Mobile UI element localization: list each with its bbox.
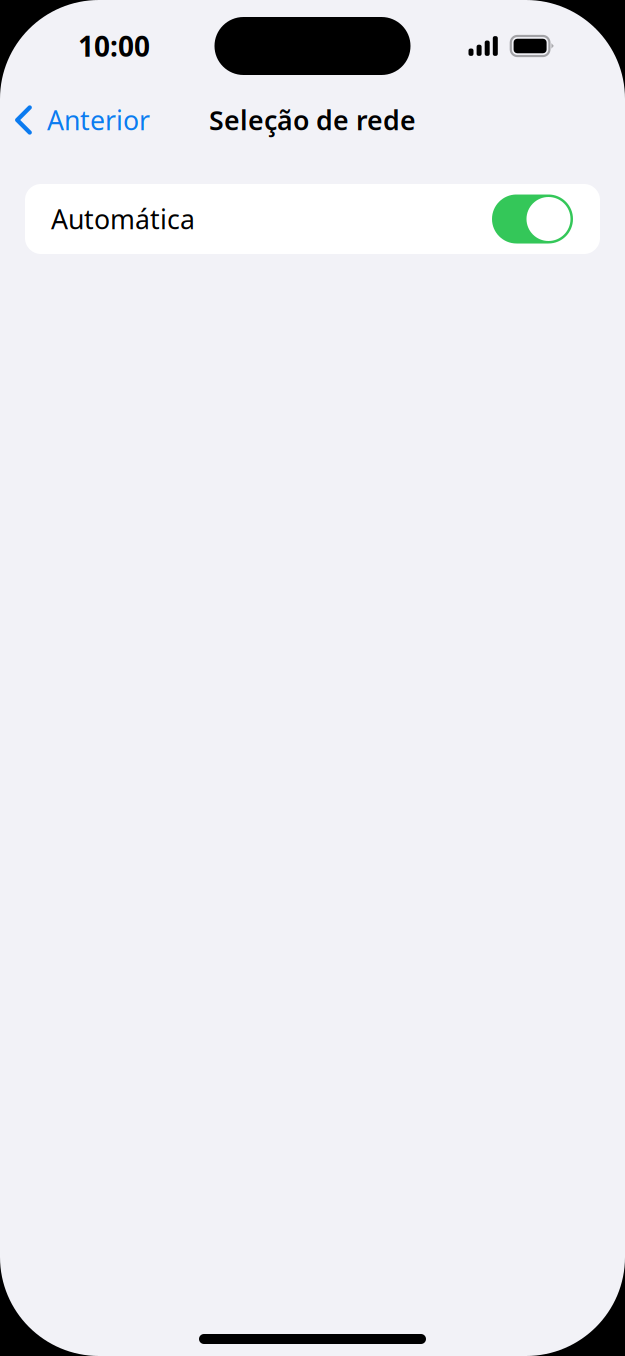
button[interactable]: Automática: [25, 184, 600, 254]
staticText: 10:00: [78, 27, 150, 65]
staticText: Seleção de rede: [209, 102, 416, 138]
staticText: Automática: [51, 201, 195, 237]
button[interactable]: Anterior: [0, 94, 160, 146]
staticText: Anterior: [47, 102, 150, 138]
